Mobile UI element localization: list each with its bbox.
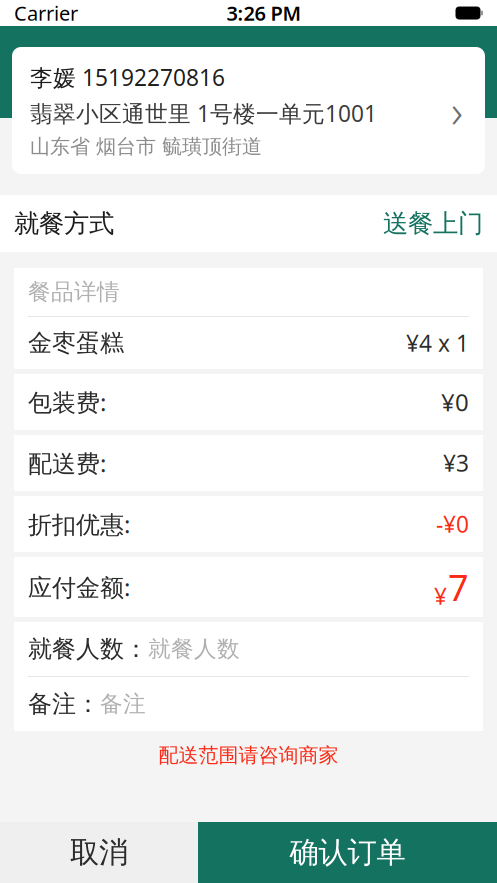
- staticText: 包装费:: [28, 386, 106, 418]
- staticText: ›: [451, 80, 463, 141]
- staticText: 送餐上门: [383, 208, 483, 239]
- staticText: 山东省 烟台市 毓璜顶街道: [30, 134, 262, 159]
- staticText: 李媛 15192270816: [30, 62, 225, 92]
- staticText: 确认订单: [289, 834, 405, 870]
- staticText: -¥0: [436, 509, 469, 539]
- button[interactable]: 取消: [0, 822, 198, 883]
- staticText: 3:26 PM: [226, 0, 301, 26]
- staticText: 备注: [100, 690, 146, 718]
- staticText: 就餐人数：: [28, 634, 148, 664]
- staticText: 折扣优惠:: [28, 508, 130, 540]
- staticText: 就餐方式: [14, 208, 114, 239]
- button[interactable]: 就餐人数：: [14, 622, 483, 676]
- button[interactable]: 确认订单: [198, 822, 497, 883]
- staticText: ¥0: [441, 386, 469, 418]
- staticText: 配送范围请咨询商家: [158, 743, 338, 768]
- staticText: 餐品详情: [28, 278, 120, 306]
- staticText: 金枣蛋糕: [28, 328, 124, 358]
- staticText: ¥3: [443, 448, 469, 478]
- staticText: ¥4 x 1: [406, 328, 469, 358]
- button[interactable]: 李媛 15192270816: [12, 47, 485, 174]
- staticText: 取消: [70, 834, 128, 870]
- staticText: ¥: [434, 581, 447, 611]
- staticText: 配送费:: [28, 447, 106, 479]
- button[interactable]: 备注：: [14, 677, 483, 731]
- staticText: 翡翠小区通世里 1号楼一单元1001: [30, 98, 377, 128]
- staticText: 就餐人数: [148, 635, 240, 663]
- staticText: 备注：: [28, 689, 100, 719]
- staticText: Carrier: [14, 0, 78, 26]
- staticText: 应付金额:: [28, 571, 130, 603]
- button[interactable]: 就餐方式: [0, 195, 497, 252]
- staticText: 7: [448, 563, 469, 611]
